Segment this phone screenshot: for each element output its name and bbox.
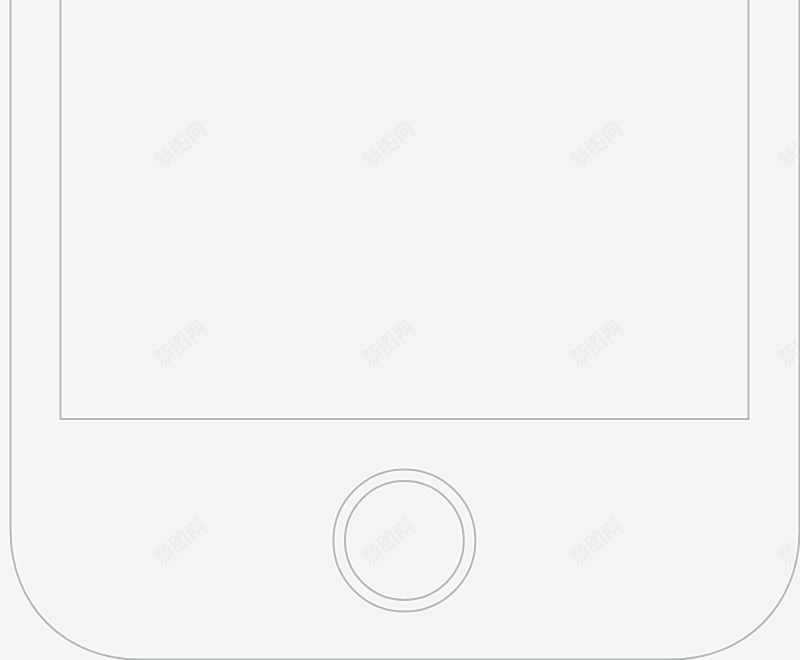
button[interactable]: Home button	[333, 470, 475, 612]
button[interactable]: Screen	[61, 0, 749, 419]
